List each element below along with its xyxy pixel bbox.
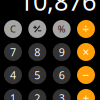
staticText: 10,876	[19, 0, 96, 18]
button[interactable]: 5	[28, 66, 46, 84]
button[interactable]: 1	[4, 89, 22, 100]
staticText: ÷	[82, 21, 89, 37]
staticText: ×	[82, 44, 89, 60]
staticText: 9	[59, 45, 65, 59]
button[interactable]: 9	[53, 43, 71, 61]
button[interactable]: Plus	[77, 89, 95, 100]
staticText: 2	[34, 91, 40, 100]
staticText: %	[58, 23, 66, 35]
staticText: 4	[10, 68, 16, 82]
button[interactable]: Plus minus	[28, 20, 46, 38]
button[interactable]: Clear	[4, 20, 22, 38]
staticText: +	[82, 90, 89, 100]
staticText: 5	[34, 68, 40, 82]
staticText: 3	[59, 91, 65, 100]
staticText: C	[10, 23, 16, 35]
staticText: 1	[10, 91, 16, 100]
button[interactable]: Divide	[77, 20, 95, 38]
staticText: −	[82, 67, 89, 83]
button[interactable]: 6	[53, 66, 71, 84]
button[interactable]: 4	[4, 66, 22, 84]
button[interactable]: Percent	[53, 20, 71, 38]
staticText: 7	[10, 45, 16, 59]
button[interactable]: Minus	[77, 66, 95, 84]
button[interactable]: 7	[4, 43, 22, 61]
staticText: 8	[34, 45, 40, 59]
button[interactable]: 3	[53, 89, 71, 100]
button[interactable]: Multiply	[77, 43, 95, 61]
button[interactable]: 8	[28, 43, 46, 61]
button[interactable]: 2	[28, 89, 46, 100]
staticText: 6	[59, 68, 65, 82]
